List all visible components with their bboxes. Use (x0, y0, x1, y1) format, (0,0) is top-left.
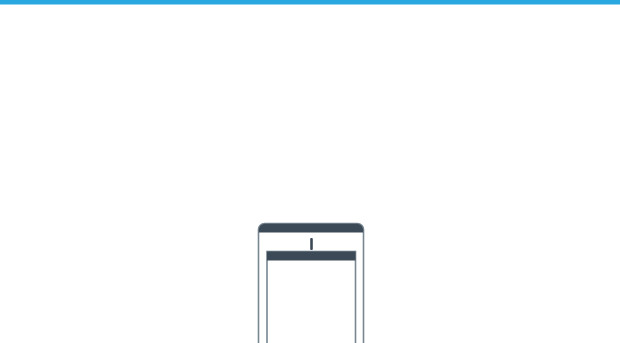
button[interactable]: Mobile device illustration (0, 0, 620, 343)
